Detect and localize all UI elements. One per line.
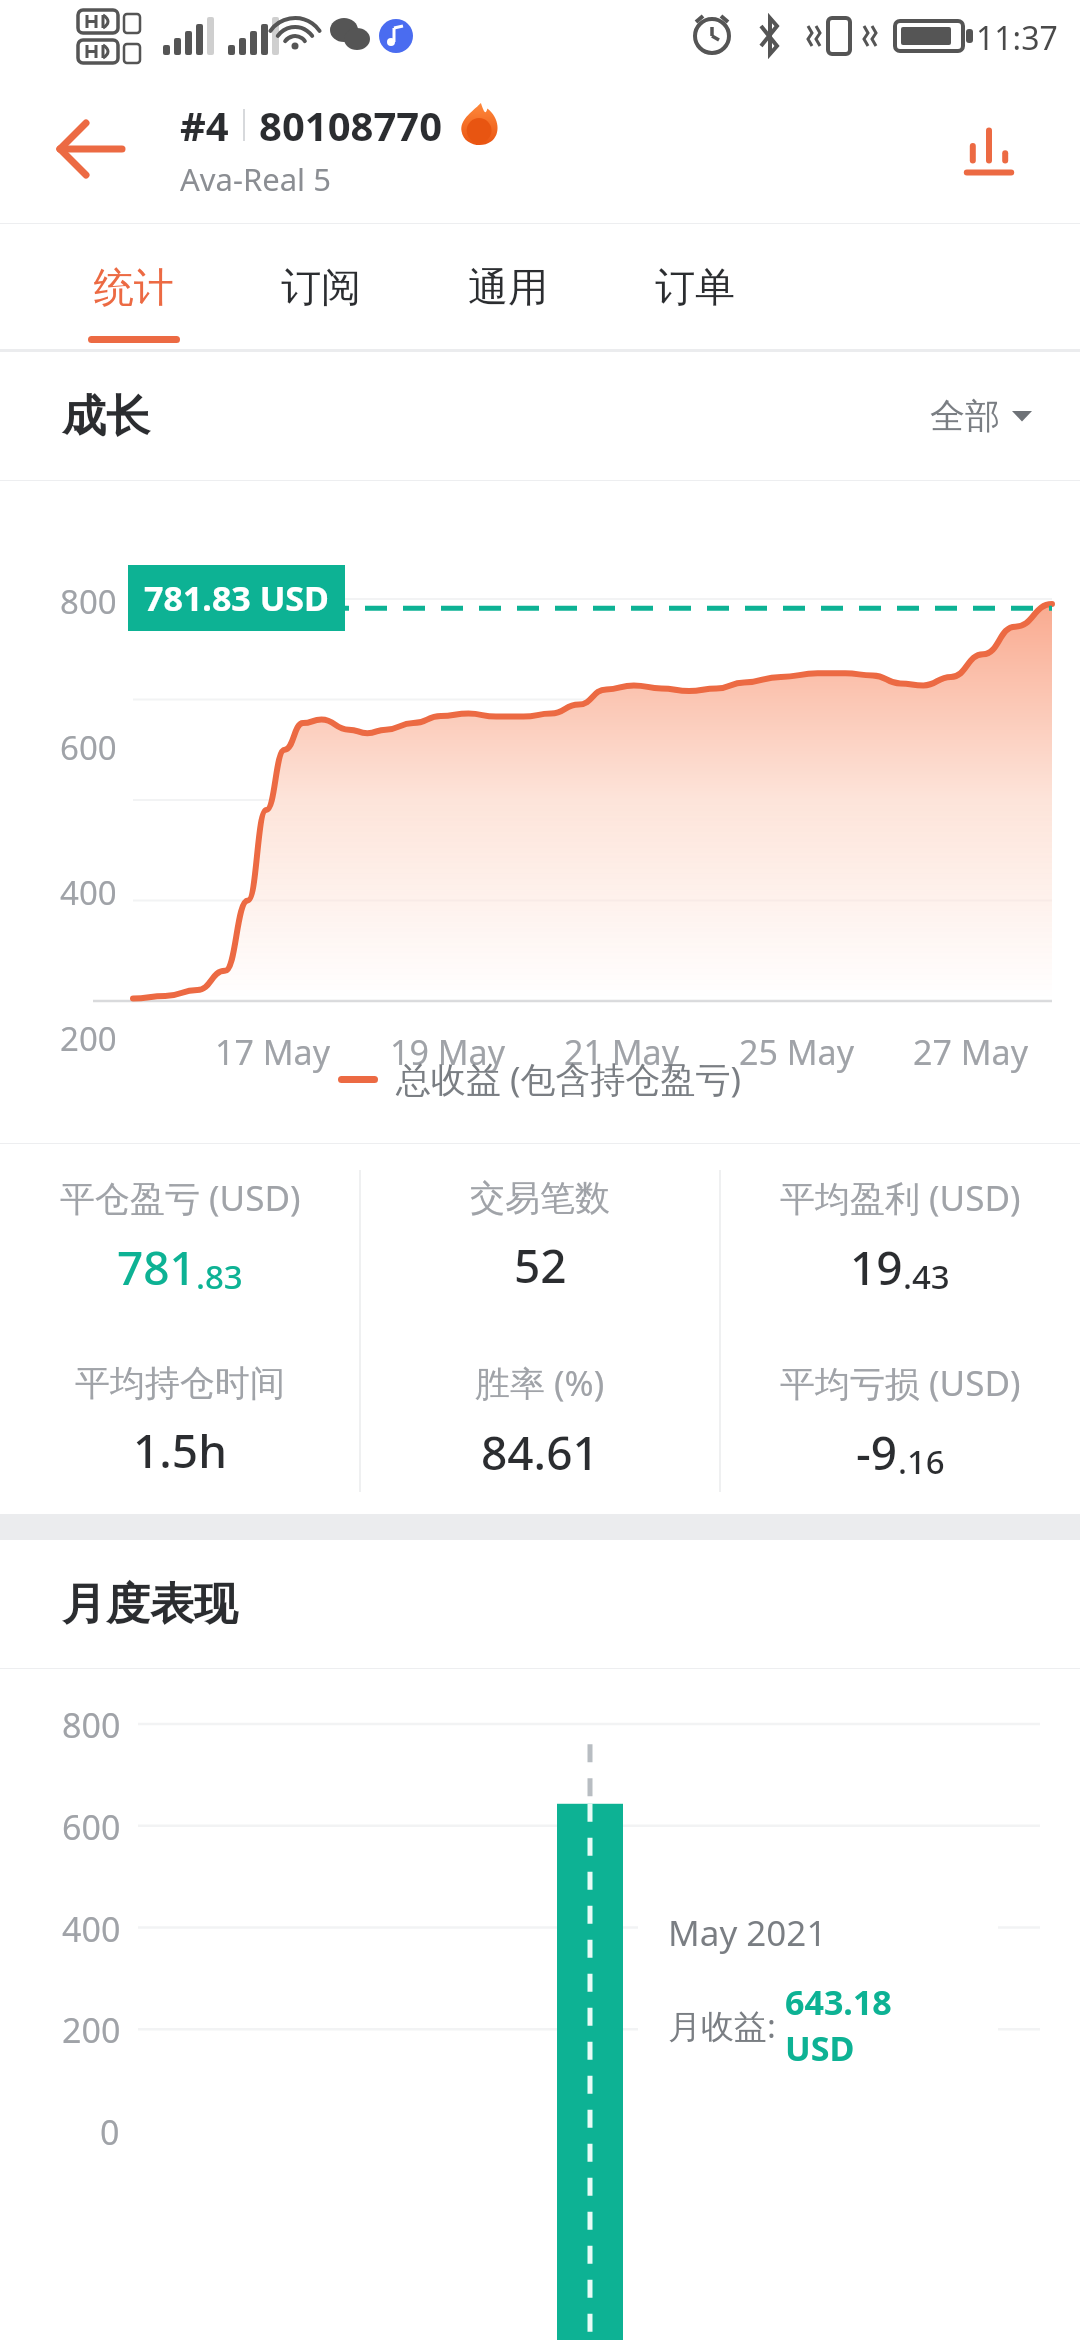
staticText: 800 [62,1702,121,1748]
staticText: 1.5h [133,1419,227,1482]
staticText: .16 [898,1439,945,1484]
button[interactable]: 全部 [930,394,1032,438]
button[interactable]: Statistics chart [948,108,1030,190]
staticText: 781.83 USD [144,575,329,621]
staticText: 84.61 [481,1421,599,1484]
staticText: -9 [856,1421,898,1484]
staticText: 月度表现 [62,1577,238,1632]
staticText: 600 [60,725,117,770]
staticText: 27 May [913,1029,1028,1075]
staticText: 781 [117,1236,196,1299]
button[interactable]: Back [52,111,128,187]
staticText: 通用 [468,262,548,312]
staticText: 交易笔数 [470,1176,610,1220]
staticText: 19 [850,1236,903,1299]
staticText: 21 May [564,1029,679,1075]
staticText: 0 [100,2109,120,2155]
staticText: 400 [62,1906,121,1952]
button[interactable]: 通用 [414,224,601,349]
staticText: 平均持仓时间 [75,1361,285,1405]
staticText: 800 [60,579,117,624]
staticText: 400 [60,870,117,915]
staticText: .83 [196,1254,243,1299]
staticText: 600 [62,1804,121,1850]
button[interactable]: 订单 [601,224,788,349]
staticText: 订单 [655,262,735,312]
staticText: 平均盈利 (USD) [780,1174,1021,1222]
staticText: 0 [96,1161,115,1206]
staticText: 全部 [930,394,1000,438]
staticText: 19 May [390,1029,505,1075]
staticText: May 2021 [668,1909,827,1957]
staticText: 胜率 (%) [475,1359,605,1407]
staticText: 平均亏损 (USD) [780,1359,1021,1407]
staticText: 月收益: [668,2003,785,2048]
staticText: 200 [60,1016,117,1061]
staticText: 订阅 [281,262,361,312]
staticText: Ava-Real 5 [180,158,331,200]
staticText: 643.18 USD [785,1979,968,2071]
staticText: 成长 [62,389,150,444]
staticText: 80108770 [259,98,443,152]
staticText: 25 May [739,1029,854,1075]
staticText: 总收益 (包含持仓盈亏) [396,1055,742,1103]
button[interactable]: 订阅 [227,224,414,349]
staticText: 11:37 [976,16,1058,60]
staticText: 52 [514,1234,567,1297]
staticText: #4 [180,98,229,152]
button[interactable]: 统计 [40,224,227,349]
staticText: 17 May [215,1029,330,1075]
staticText: 200 [62,2007,121,2053]
staticText: .43 [903,1254,950,1299]
staticText: 统计 [94,262,174,312]
staticText: 平仓盈亏 (USD) [60,1174,301,1222]
